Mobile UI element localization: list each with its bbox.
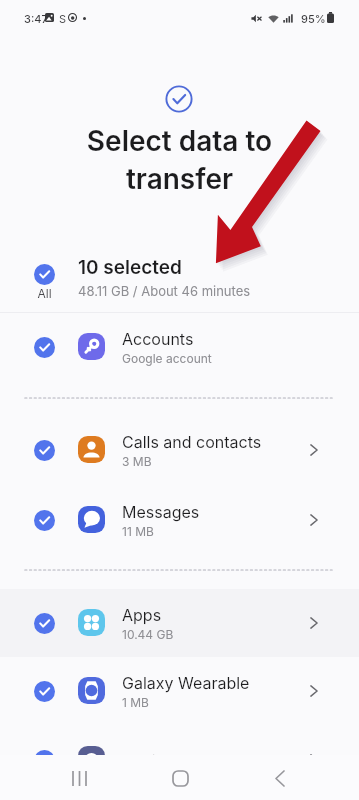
staticText: 1 MB — [122, 695, 149, 710]
button[interactable]: Back — [262, 760, 298, 796]
staticText: All — [33, 286, 56, 301]
button[interactable]: Open Galaxy Wearable — [297, 674, 331, 708]
staticText: 3 MB — [122, 454, 152, 469]
staticText: Calls and contacts — [122, 432, 262, 451]
button[interactable]: Open Calls and contacts — [297, 433, 331, 467]
button[interactable]: Open Apps — [297, 606, 331, 640]
button[interactable]: Open Settings — [297, 743, 331, 777]
button[interactable]: Recents — [61, 760, 97, 796]
staticText: Select data to transfer — [0, 124, 359, 196]
staticText: S — [59, 12, 67, 25]
button[interactable]: Galaxy Wearable — [0, 657, 359, 725]
button[interactable]: Home — [162, 760, 198, 796]
staticText: 48.11 GB / About 46 minutes — [78, 283, 251, 299]
staticText: Apps — [122, 605, 162, 624]
staticText: Messages — [122, 502, 200, 521]
button[interactable]: Calls and contacts — [0, 416, 359, 484]
staticText: 95% — [301, 12, 326, 25]
staticText: Google account — [122, 351, 212, 366]
button[interactable]: Apps — [0, 589, 359, 657]
button[interactable]: Messages — [0, 486, 359, 554]
staticText: 10.44 GB — [122, 627, 174, 642]
staticText: 11 MB — [122, 524, 154, 539]
button[interactable]: Open Messages — [297, 503, 331, 537]
button[interactable]: Accounts — [0, 313, 359, 381]
button[interactable]: All — [0, 249, 359, 312]
staticText: 10 selected — [78, 256, 182, 279]
staticText: Galaxy Wearable — [122, 673, 250, 692]
staticText: 3:47 — [24, 12, 48, 25]
button[interactable]: Settings — [0, 726, 359, 794]
staticText: Accounts — [122, 329, 194, 348]
